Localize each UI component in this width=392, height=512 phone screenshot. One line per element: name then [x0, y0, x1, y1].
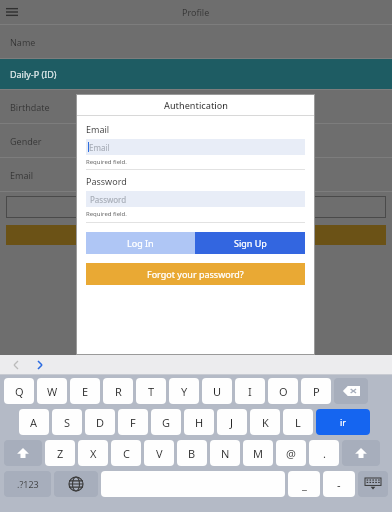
button[interactable]: Previous — [8, 357, 24, 373]
staticText: Required field. — [86, 210, 127, 218]
button[interactable]: F — [118, 409, 148, 435]
button[interactable]: G — [151, 409, 181, 435]
staticText: J — [230, 415, 234, 430]
staticText: .?123 — [17, 478, 39, 490]
button[interactable]: E — [70, 378, 100, 404]
staticText: _ — [302, 477, 307, 492]
button[interactable]: O — [268, 378, 298, 404]
staticText: Password — [86, 175, 127, 187]
button[interactable]: V — [144, 440, 174, 466]
button[interactable]: Sign Up — [195, 232, 305, 254]
staticText: R — [115, 384, 122, 399]
button[interactable]: R — [103, 378, 133, 404]
button[interactable]: B — [177, 440, 207, 466]
button[interactable]: S — [52, 409, 82, 435]
staticText: D — [96, 415, 105, 430]
staticText: Z — [57, 446, 64, 461]
staticText: @ — [286, 446, 296, 461]
button[interactable]: U — [202, 378, 232, 404]
staticText: Email — [86, 123, 110, 135]
button[interactable]: ir — [316, 409, 370, 435]
staticText: H — [195, 415, 204, 430]
button[interactable]: Menu — [0, 0, 24, 24]
staticText: Q — [15, 384, 24, 399]
button[interactable]: Z — [45, 440, 75, 466]
button[interactable]: C — [111, 440, 141, 466]
staticText: E — [82, 384, 89, 399]
staticText: I — [248, 384, 252, 399]
staticText: - — [337, 477, 341, 492]
button[interactable]: . — [309, 440, 339, 466]
button[interactable]: Forgot your password? — [86, 263, 305, 285]
button[interactable]: Backspace — [334, 378, 368, 404]
button[interactable]: _ — [288, 471, 320, 497]
button[interactable]: Log In — [86, 232, 195, 254]
staticText: Authentication — [164, 99, 228, 111]
button[interactable]: Daily-P (ID) — [0, 59, 392, 89]
button[interactable]: A — [19, 409, 49, 435]
button[interactable]: X — [78, 440, 108, 466]
staticText: L — [295, 415, 301, 430]
button[interactable]: M — [243, 440, 273, 466]
staticText: Sign Up — [234, 237, 267, 249]
button[interactable]: Next — [32, 357, 48, 373]
button[interactable]: - — [323, 471, 355, 497]
staticText: Birthdate — [10, 101, 50, 113]
staticText: A — [30, 415, 38, 430]
staticText: T — [148, 384, 155, 399]
staticText: O — [279, 384, 288, 399]
staticText: K — [262, 415, 269, 430]
staticText: P — [313, 384, 320, 399]
staticText: X — [90, 446, 97, 461]
button[interactable]: Shift — [342, 440, 380, 466]
staticText: Password — [90, 194, 127, 205]
staticText: M — [253, 446, 263, 461]
staticText: Required field. — [86, 158, 127, 166]
button[interactable]: Hide keyboard — [358, 471, 388, 497]
button[interactable]: @ — [276, 440, 306, 466]
staticText: Email — [10, 169, 34, 181]
button[interactable]: Password — [86, 191, 305, 207]
staticText: Name — [10, 36, 36, 48]
button[interactable]: Space — [101, 471, 285, 497]
button[interactable]: Email — [0, 158, 392, 191]
button[interactable]: W — [37, 378, 67, 404]
button[interactable]: Email — [86, 139, 305, 155]
staticText: S — [64, 415, 71, 430]
button[interactable]: D — [85, 409, 115, 435]
button[interactable]: Q — [4, 378, 34, 404]
button[interactable]: Birthdate — [0, 90, 392, 123]
button[interactable] — [6, 225, 386, 245]
button[interactable]: Gender — [0, 124, 392, 157]
staticText: ir — [340, 416, 347, 428]
button[interactable]: L — [283, 409, 313, 435]
button[interactable]: H — [184, 409, 214, 435]
button[interactable] — [6, 196, 386, 218]
staticText: Profile — [182, 6, 210, 18]
button[interactable]: Y — [169, 378, 199, 404]
staticText: F — [130, 415, 136, 430]
button[interactable]: P — [301, 378, 331, 404]
button[interactable]: Shift — [4, 440, 42, 466]
staticText: . — [323, 446, 326, 461]
button[interactable]: I — [235, 378, 265, 404]
staticText: V — [156, 446, 163, 461]
staticText: N — [221, 446, 230, 461]
staticText: Log In — [127, 237, 154, 249]
button[interactable]: Change language — [54, 471, 98, 497]
staticText: Y — [181, 384, 188, 399]
staticText: Daily-P (ID) — [10, 68, 57, 80]
staticText: Gender — [10, 135, 42, 147]
staticText: U — [213, 384, 222, 399]
button[interactable]: J — [217, 409, 247, 435]
button[interactable]: T — [136, 378, 166, 404]
staticText: W — [47, 384, 58, 399]
button[interactable]: .?123 — [4, 471, 51, 497]
staticText: B — [188, 446, 196, 461]
staticText: Email — [89, 142, 110, 153]
button[interactable]: K — [250, 409, 280, 435]
staticText: G — [162, 415, 171, 430]
button[interactable]: N — [210, 440, 240, 466]
staticText: Forgot your password? — [147, 268, 244, 280]
